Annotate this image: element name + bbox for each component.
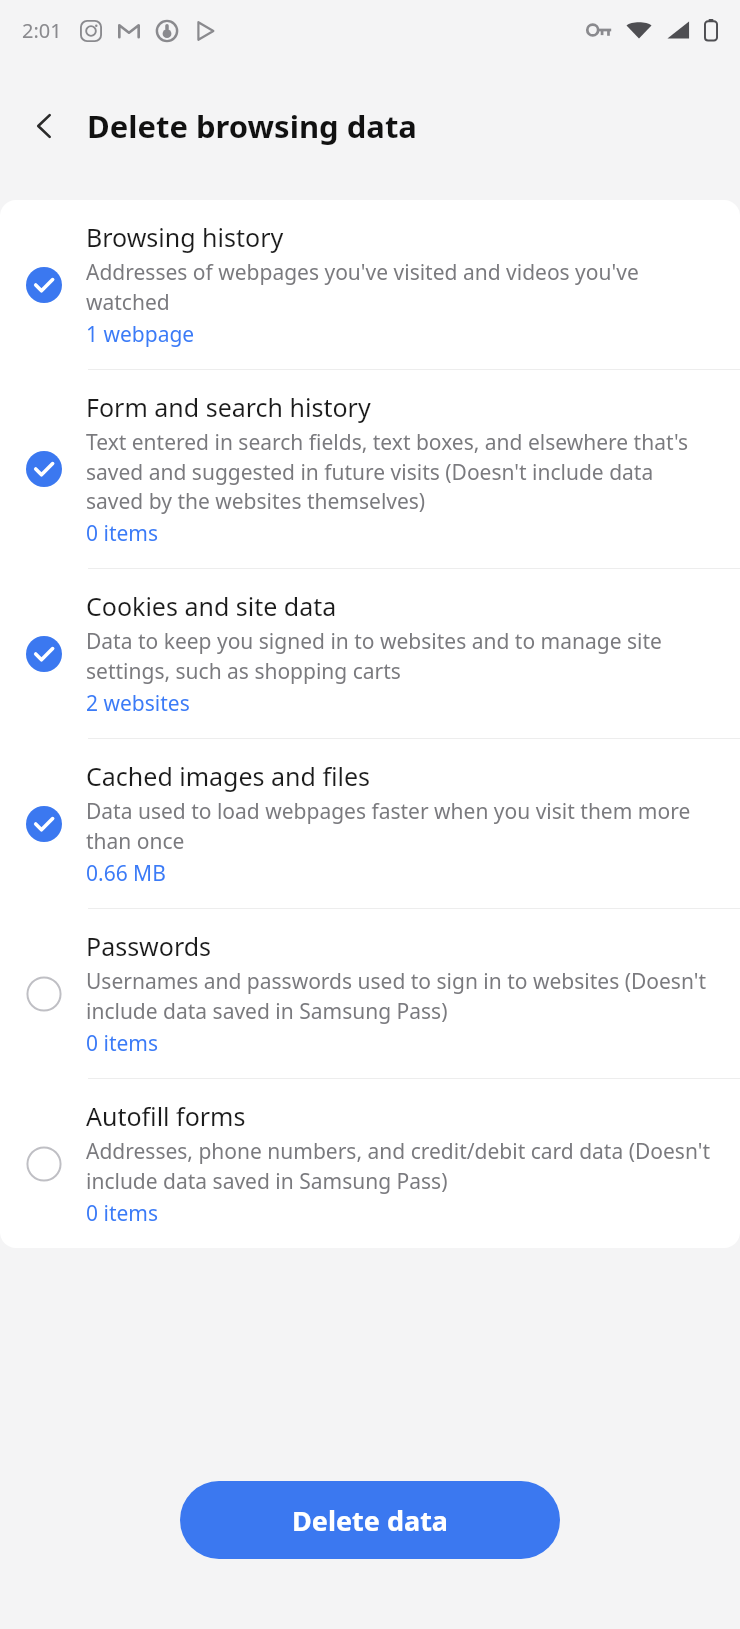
button[interactable]: Back bbox=[22, 103, 68, 149]
button[interactable]: Form and search history bbox=[0, 370, 740, 568]
button[interactable]: Cached images and files bbox=[0, 739, 740, 908]
staticText: Autofill forms bbox=[86, 1099, 246, 1133]
staticText: 2:01 bbox=[22, 17, 62, 44]
staticText: 1 webpage bbox=[86, 320, 195, 349]
staticText: Passwords bbox=[86, 929, 212, 963]
button[interactable]: Passwords bbox=[0, 909, 740, 1078]
staticText: 0 items bbox=[86, 1029, 159, 1058]
staticText: Addresses of webpages you've visited and… bbox=[86, 258, 714, 316]
staticText: 0 items bbox=[86, 519, 159, 548]
staticText: 0.66 MB bbox=[86, 859, 166, 888]
button[interactable]: Browsing history bbox=[0, 200, 740, 369]
staticText: Data to keep you signed in to websites a… bbox=[86, 627, 714, 685]
staticText: Addresses, phone numbers, and credit/deb… bbox=[86, 1137, 714, 1195]
staticText: Delete browsing data bbox=[87, 105, 417, 147]
button[interactable]: Delete data bbox=[180, 1481, 560, 1559]
staticText: Cookies and site data bbox=[86, 589, 337, 623]
staticText: 2 websites bbox=[86, 689, 190, 718]
staticText: Data used to load webpages faster when y… bbox=[86, 797, 714, 855]
staticText: Form and search history bbox=[86, 390, 371, 424]
staticText: Cached images and files bbox=[86, 759, 370, 793]
staticText: Usernames and passwords used to sign in … bbox=[86, 967, 714, 1025]
staticText: Browsing history bbox=[86, 220, 284, 254]
staticText: Text entered in search fields, text boxe… bbox=[86, 428, 714, 515]
button[interactable]: Autofill forms bbox=[0, 1079, 740, 1248]
staticText: Delete data bbox=[292, 1502, 449, 1539]
button[interactable]: Cookies and site data bbox=[0, 569, 740, 738]
staticText: 0 items bbox=[86, 1199, 159, 1228]
